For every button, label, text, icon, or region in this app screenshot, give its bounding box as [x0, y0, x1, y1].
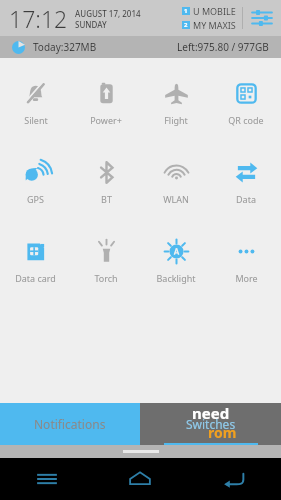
- button[interactable]: Back: [187, 458, 281, 500]
- staticText: need: [192, 403, 230, 423]
- button[interactable]: Menu: [0, 458, 93, 500]
- staticText: Switches: [186, 416, 236, 432]
- staticText: QR code: [228, 114, 264, 126]
- staticText: AUGUST 17, 2014: [75, 8, 141, 19]
- staticText: 1: [184, 7, 188, 15]
- button[interactable]: Data: [211, 157, 281, 207]
- staticText: Data: [236, 193, 256, 205]
- button[interactable]: BT: [71, 157, 141, 207]
- staticText: rom: [208, 423, 237, 442]
- button[interactable]: Silent: [0, 78, 71, 128]
- staticText: 2: [184, 21, 188, 29]
- staticText: Today:327MB: [33, 40, 97, 54]
- staticText: Backlight: [156, 272, 196, 284]
- staticText: Torch: [94, 272, 118, 284]
- button[interactable]: Switches: [140, 403, 281, 445]
- staticText: 17:12: [9, 3, 68, 34]
- button[interactable]: Settings: [249, 5, 275, 31]
- staticText: More: [235, 272, 258, 284]
- staticText: Notifications: [34, 416, 106, 432]
- staticText: BT: [101, 193, 112, 205]
- staticText: U MOBILE: [193, 5, 236, 17]
- staticText: MY MAXIS: [193, 19, 236, 31]
- button[interactable]: Power+: [71, 78, 141, 128]
- staticText: Data card: [15, 272, 56, 284]
- button[interactable]: Home: [93, 458, 187, 500]
- staticText: Left:975.80 / 977GB: [177, 40, 269, 54]
- button[interactable]: Torch: [71, 236, 141, 286]
- staticText: Flight: [164, 114, 188, 126]
- staticText: Silent: [24, 114, 48, 126]
- staticText: Power+: [90, 114, 122, 126]
- button[interactable]: Notifications: [0, 403, 140, 445]
- staticText: GPS: [27, 193, 44, 205]
- button[interactable]: QR code: [211, 78, 281, 128]
- button[interactable]: GPS: [0, 157, 71, 207]
- button[interactable]: Data card: [0, 236, 71, 286]
- button[interactable]: Flight: [141, 78, 211, 128]
- button[interactable]: WLAN: [141, 157, 211, 207]
- button[interactable]: More: [211, 236, 281, 286]
- staticText: WLAN: [163, 193, 189, 205]
- button[interactable]: Backlight: [141, 236, 211, 286]
- staticText: SUNDAY: [75, 19, 107, 30]
